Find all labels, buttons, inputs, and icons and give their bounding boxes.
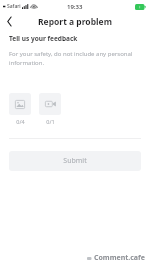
staticText: Report a problem [38, 16, 112, 28]
staticText: For your safety, do not include any pers… [9, 50, 141, 67]
staticText: 0/1 [46, 118, 55, 125]
button[interactable]: Add photo [9, 93, 31, 115]
staticText: Safari [7, 3, 21, 10]
staticText: 19:33 [67, 3, 83, 11]
staticText: 0/4 [16, 118, 25, 125]
button[interactable]: Add video [39, 93, 61, 115]
button[interactable]: Submit [9, 151, 141, 171]
staticText: Comment.cafe [94, 253, 145, 263]
staticText: Tell us your feedback [9, 34, 78, 43]
button[interactable]: Back [0, 13, 18, 30]
staticText: Submit [63, 156, 87, 166]
